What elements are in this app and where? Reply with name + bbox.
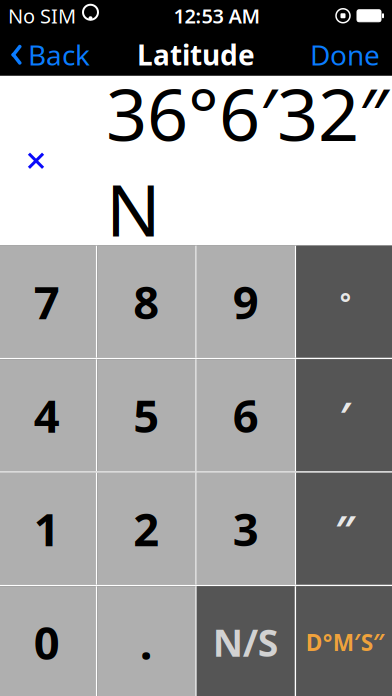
button[interactable]: 3: [197, 473, 295, 585]
button[interactable]: .: [97, 586, 195, 696]
staticText: 5: [133, 385, 159, 445]
button[interactable]: 7: [0, 246, 96, 358]
staticText: .: [140, 612, 153, 672]
button[interactable]: 1: [0, 473, 96, 585]
staticText: 2: [133, 499, 159, 559]
staticText: 3: [233, 499, 259, 559]
button[interactable]: 0: [0, 586, 96, 696]
staticText: ′: [339, 389, 351, 442]
staticText: 1: [34, 499, 60, 559]
staticText: No SIM: [8, 2, 76, 29]
staticText: °: [340, 284, 351, 319]
button[interactable]: Seconds: [296, 473, 392, 585]
staticText: D°M′S″: [306, 627, 385, 657]
button[interactable]: 9: [197, 246, 295, 358]
staticText: 8: [133, 272, 159, 332]
button[interactable]: 5: [97, 359, 195, 471]
button[interactable]: North or South: [197, 586, 295, 696]
button[interactable]: Degrees: [296, 246, 392, 358]
staticText: Back: [28, 36, 90, 73]
staticText: 7: [34, 272, 60, 332]
button[interactable]: 2: [97, 473, 195, 585]
staticText: 4: [34, 385, 60, 445]
button[interactable]: Degrees minutes seconds format: [296, 586, 392, 696]
staticText: 6: [233, 385, 259, 445]
button[interactable]: Clear: [8, 133, 64, 189]
button[interactable]: Done: [300, 34, 392, 76]
staticText: 36°6′32″N: [106, 65, 388, 256]
staticText: 9: [233, 272, 259, 332]
staticText: 0: [34, 612, 60, 672]
button[interactable]: 4: [0, 359, 96, 471]
staticText: Latitude: [137, 36, 255, 73]
staticText: Done: [310, 36, 380, 73]
button[interactable]: 6: [197, 359, 295, 471]
button[interactable]: 8: [97, 246, 195, 358]
staticText: 12:53 AM: [173, 2, 260, 29]
button[interactable]: Minutes: [296, 359, 392, 471]
staticText: N/S: [213, 617, 279, 667]
button[interactable]: Back: [0, 34, 100, 76]
staticText: ″: [335, 502, 356, 555]
